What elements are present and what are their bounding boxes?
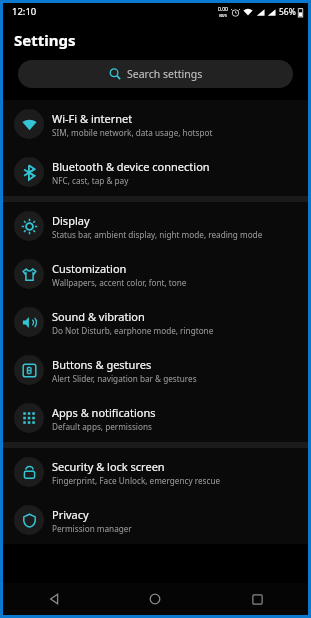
staticText: Buttons & gestures [52, 357, 152, 372]
staticText: Security & lock screen [52, 459, 165, 474]
staticText: Wi-Fi & internet [52, 111, 133, 126]
staticText: Fingerprint, Face Unlock, emergency resc… [52, 475, 221, 486]
staticText: Do Not Disturb, earphone mode, ringtone [52, 325, 214, 336]
staticText: Apps & notifications [52, 405, 156, 420]
staticText: Status bar, ambient display, night mode,… [52, 229, 263, 240]
staticText: Default apps, permissions [52, 421, 152, 432]
staticText: 56% [279, 6, 296, 18]
staticText: NFC, cast, tap & pay [52, 175, 129, 186]
button[interactable]: Search settings [18, 60, 293, 88]
button[interactable]: Wi-Fi & internet [3, 100, 308, 148]
staticText: Search settings [127, 67, 203, 81]
button[interactable]: Sound & vibration [3, 298, 308, 346]
staticText: Settings [14, 30, 76, 50]
button[interactable]: Back [3, 583, 104, 615]
staticText: SIM, mobile network, data usage, hotspot [52, 127, 213, 138]
staticText: Alert Slider, navigation bar & gestures [52, 373, 197, 384]
staticText: Permission manager [52, 523, 132, 534]
button[interactable]: Customization [3, 250, 308, 298]
staticText: 12:10 [12, 5, 37, 18]
button[interactable]: Security & lock screen [3, 448, 308, 496]
staticText: Customization [52, 261, 127, 276]
staticText: Wallpapers, accent color, font, tone [52, 277, 187, 288]
button[interactable]: Home [104, 583, 206, 615]
staticText: KB/S [219, 13, 227, 18]
staticText: 0.00 [218, 6, 228, 13]
button[interactable]: Bluetooth & device connection [3, 148, 308, 196]
button[interactable]: Privacy [3, 496, 308, 544]
button[interactable]: Apps & notifications [3, 394, 308, 442]
button[interactable]: Recent apps [206, 583, 308, 615]
staticText: Display [52, 213, 90, 228]
staticText: Privacy [52, 507, 89, 522]
button[interactable]: Buttons & gestures [3, 346, 308, 394]
staticText: Sound & vibration [52, 309, 145, 324]
button[interactable]: Display [3, 202, 308, 250]
staticText: Bluetooth & device connection [52, 159, 210, 174]
